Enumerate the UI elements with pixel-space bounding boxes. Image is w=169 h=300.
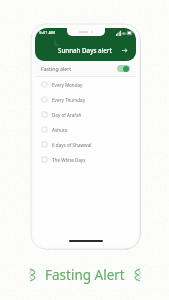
staticText: Sunnah Days alert	[58, 46, 112, 54]
button[interactable]: Every Thursday	[35, 92, 136, 107]
staticText: Every Thursday	[52, 97, 85, 103]
button[interactable]: 6 days of Shawwal	[35, 137, 136, 152]
staticText: Day of Arafah	[52, 112, 82, 118]
staticText: Fasting Alert	[45, 266, 125, 284]
button[interactable]: Fasting alert	[35, 61, 136, 76]
staticText: The White Days	[52, 157, 86, 163]
button[interactable]: Every Monday	[35, 77, 136, 92]
staticText: 6 days of Shawwal	[52, 142, 92, 148]
staticText: Ashura	[52, 127, 68, 133]
staticText: Fasting alert	[41, 65, 72, 72]
button[interactable]: Next	[118, 44, 131, 57]
button[interactable]: The White Days	[35, 152, 136, 167]
button[interactable]: Ashura	[35, 122, 136, 137]
staticText: Every Monday	[52, 82, 83, 88]
button[interactable]: Fasting alert toggle	[117, 65, 130, 72]
staticText: 9:41 AM	[39, 30, 56, 36]
button[interactable]: Day of Arafah	[35, 107, 136, 122]
